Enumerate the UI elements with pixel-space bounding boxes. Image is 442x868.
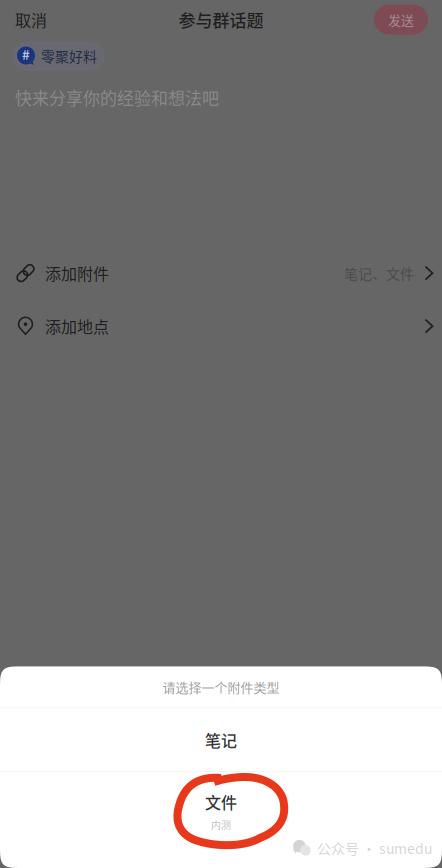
button[interactable]: 添加地点 bbox=[0, 300, 442, 353]
button[interactable]: 添加附件 bbox=[0, 247, 442, 300]
staticText: 请选择一个附件类型 bbox=[162, 677, 279, 696]
button[interactable]: 发送 bbox=[374, 4, 428, 34]
staticText: # bbox=[22, 45, 30, 64]
button[interactable]: 取消 bbox=[0, 0, 62, 39]
staticText: 快来分享你的经验和想法吧 bbox=[15, 85, 219, 110]
staticText: 发送 bbox=[388, 10, 414, 29]
staticText: 取消 bbox=[15, 8, 47, 31]
button[interactable]: 笔记 bbox=[0, 708, 442, 771]
staticText: 笔记 bbox=[205, 728, 237, 751]
staticText: 零聚好料 bbox=[41, 46, 97, 66]
staticText: 参与群话题 bbox=[178, 7, 263, 32]
button[interactable]: 文件 bbox=[0, 772, 442, 868]
staticText: 文件 bbox=[205, 790, 237, 813]
staticText: 内测 bbox=[211, 817, 231, 832]
staticText: 笔记、文件 bbox=[344, 263, 414, 283]
staticText: 添加地点 bbox=[45, 314, 109, 338]
staticText: 公众号 · sumedu bbox=[317, 838, 432, 858]
staticText: 添加附件 bbox=[45, 261, 109, 285]
